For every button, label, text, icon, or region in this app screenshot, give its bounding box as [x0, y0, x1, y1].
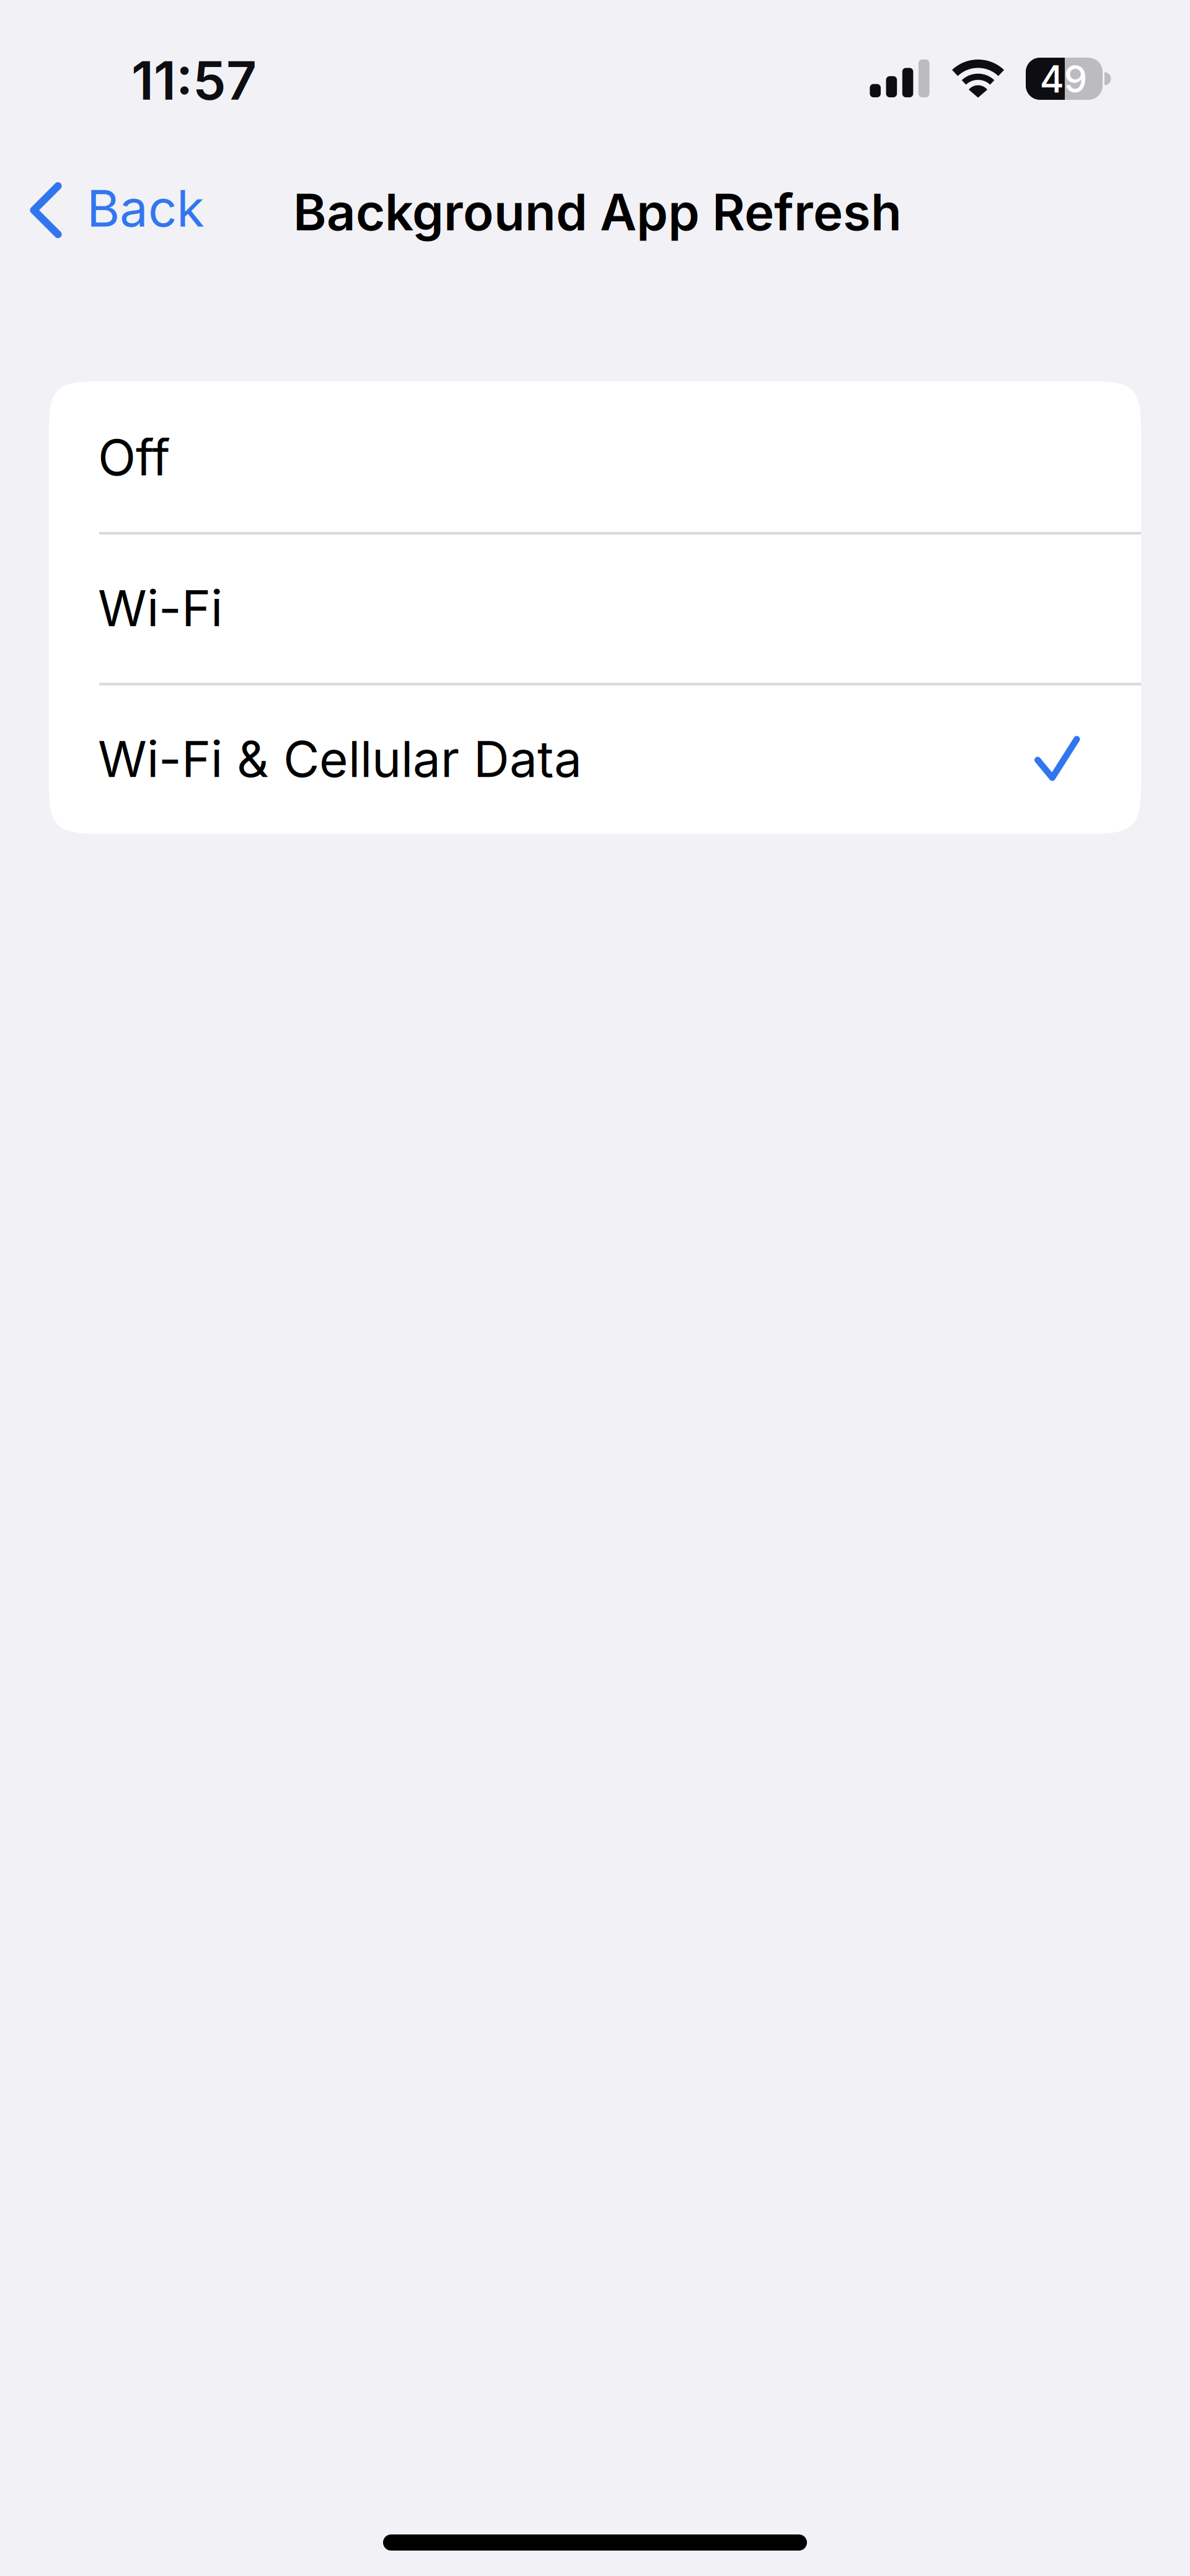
staticText: Back [87, 178, 205, 239]
staticText: Wi-Fi & Cellular Data [98, 729, 582, 789]
staticText: 49 [1040, 57, 1087, 102]
staticText: Wi-Fi [98, 578, 223, 638]
button[interactable]: Off [49, 381, 1141, 532]
staticText: 11:57 [131, 48, 257, 112]
button[interactable]: Back [25, 165, 240, 252]
button[interactable]: Wi-Fi [49, 532, 1141, 683]
button[interactable]: Wi-Fi & Cellular Data [49, 683, 1141, 834]
staticText: Off [98, 427, 170, 487]
staticText: Background App Refresh [293, 182, 902, 243]
